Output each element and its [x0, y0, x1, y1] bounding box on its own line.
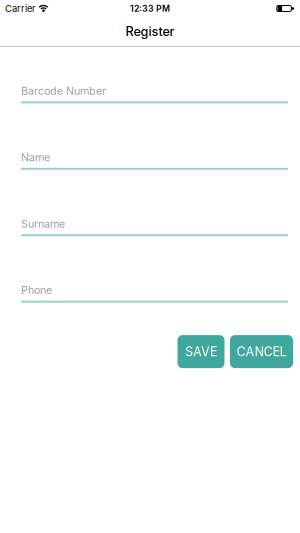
button[interactable]: Barcode Number text field: [21, 84, 288, 103]
button[interactable]: CANCEL: [230, 335, 293, 368]
staticText: Register: [125, 24, 174, 39]
button[interactable]: SAVE: [177, 335, 224, 368]
staticText: Carrier: [5, 3, 36, 14]
staticText: Name: [21, 151, 50, 164]
staticText: SAVE: [185, 344, 217, 359]
button[interactable]: Phone text field: [21, 284, 288, 303]
button[interactable]: Name text field: [21, 151, 288, 170]
staticText: Barcode Number: [21, 84, 106, 97]
staticText: CANCEL: [236, 344, 286, 359]
staticText: Surname: [21, 217, 65, 230]
staticText: 12:33 PM: [130, 3, 170, 14]
staticText: Phone: [21, 284, 52, 297]
button[interactable]: Surname text field: [21, 217, 288, 236]
